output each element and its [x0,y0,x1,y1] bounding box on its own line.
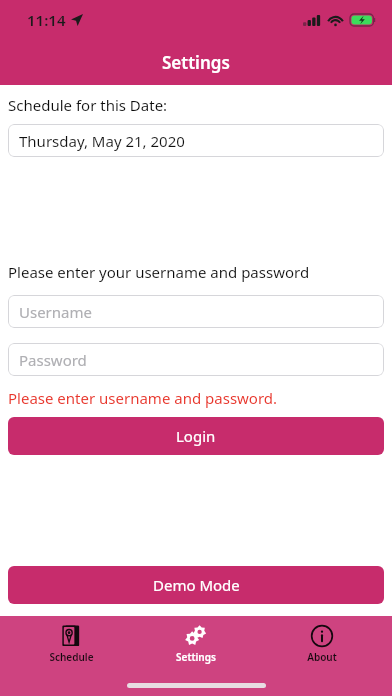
button[interactable]: Username [8,295,384,328]
staticText: Username [19,302,92,322]
button[interactable]: About [267,622,377,666]
staticText: Please enter username and password. [8,388,278,408]
staticText: Thursday, May 21, 2020 [19,131,185,151]
button[interactable]: Login [8,417,384,455]
button[interactable]: Thursday, May 21, 2020 [8,124,384,157]
button[interactable]: Password [8,343,384,376]
staticText: Password [19,350,87,370]
staticText: Please enter your username and password [8,262,310,282]
staticText: Schedule [49,650,94,664]
staticText: Settings [162,51,230,74]
button[interactable]: Demo Mode [8,566,384,604]
button[interactable]: Settings [141,622,251,666]
button[interactable]: Schedule [16,622,126,666]
staticText: Demo Mode [153,575,240,595]
staticText: Settings [176,650,216,664]
staticText: Login [176,426,216,446]
staticText: About [307,650,337,664]
staticText: Schedule for this Date: [8,95,168,115]
staticText: 11:14 [27,10,66,30]
